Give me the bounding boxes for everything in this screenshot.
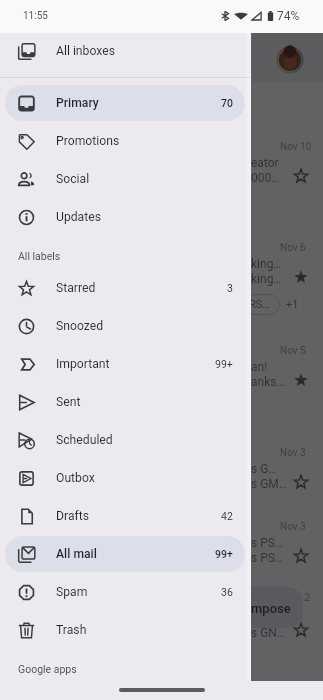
staticText: eator [251,156,279,170]
button[interactable]: Scheduled [5,422,245,458]
staticText: Updates [56,210,101,224]
button[interactable]: All inboxes [5,33,245,69]
staticText: 000… [251,171,280,185]
button[interactable]: Primary [5,85,245,121]
staticText: 42 [221,510,233,522]
button[interactable]: Promotions [5,123,245,159]
button[interactable] [243,294,280,315]
staticText: RS… [249,298,270,311]
staticText: All mail [56,547,97,561]
button[interactable]: Social [5,161,245,197]
staticText: Snoozed [56,319,104,333]
staticText: 36 [221,586,233,598]
staticText: s GN… [251,626,285,640]
staticText: Nov 6 [280,242,306,254]
staticText: Primary [56,96,99,110]
staticText: Nov 3 [280,521,306,533]
staticText: Scheduled [56,433,113,447]
button[interactable]: All mail [5,536,245,572]
staticText: All inboxes [56,44,115,58]
button[interactable]: Important [5,346,245,382]
button[interactable]: Sent [5,384,245,420]
staticText: s GM… [251,477,287,491]
staticText: 3 [227,282,233,294]
staticText: Nov 10 [280,141,312,153]
button[interactable]: Starred [5,270,245,306]
staticText: Starred [56,281,96,295]
staticText: Spam [56,585,88,599]
button[interactable]: Spam [5,574,245,610]
staticText: Nov 5 [280,345,306,357]
button[interactable]: Account [276,46,304,74]
staticText: king… [251,257,282,271]
staticText: 99+ [215,548,233,560]
staticText: 74% [277,9,300,23]
staticText: s PS… [251,551,283,565]
staticText: Google apps [18,663,77,675]
button[interactable]: Outbox [5,460,245,496]
staticText: mpose [251,601,291,616]
button[interactable]: Drafts [5,498,245,534]
button[interactable]: Compose [235,587,303,628]
staticText: Important [56,357,110,371]
staticText: 99+ [215,358,233,370]
button[interactable]: Trash [5,612,245,648]
staticText: Trash [56,623,87,637]
staticText: 70 [221,97,233,109]
staticText: Sent [56,395,81,409]
staticText: Social [56,172,90,186]
staticText: an! [251,360,268,374]
staticText: s PS… [251,536,283,550]
staticText: Nov 3 [280,447,306,459]
staticText: king… [251,272,282,286]
staticText: anks… [251,375,285,389]
button[interactable]: Snoozed [5,308,245,344]
button[interactable]: Updates [5,199,245,235]
staticText: All labels [18,250,61,262]
staticText: 11:55 [23,10,48,22]
staticText: Outbox [56,471,95,485]
staticText: Promotions [56,134,120,148]
staticText: 2 [304,591,311,604]
staticText: Drafts [56,509,90,523]
staticText: s G… [251,462,277,476]
staticText: +1 [286,298,299,311]
